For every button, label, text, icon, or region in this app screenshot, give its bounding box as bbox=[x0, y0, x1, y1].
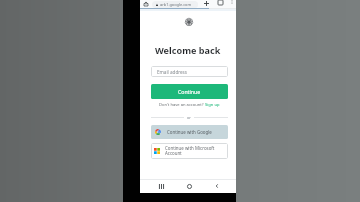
staticText: Continue with Google bbox=[167, 129, 212, 135]
button[interactable]: Back bbox=[212, 179, 222, 193]
button[interactable]: Home bbox=[184, 179, 194, 193]
button[interactable]: Continue with Microsoft Account bbox=[151, 143, 228, 159]
button[interactable]: New tab bbox=[202, 0, 210, 7]
staticText: Email address bbox=[157, 69, 188, 75]
staticText: Welcome back bbox=[155, 44, 221, 56]
button[interactable]: Email address bbox=[151, 66, 228, 77]
staticText: Continue with Microsoft Account bbox=[165, 145, 215, 157]
staticText: Don't have an account? bbox=[159, 102, 205, 108]
button[interactable]: Tabs bbox=[218, 0, 223, 6]
button[interactable]: Recents bbox=[156, 179, 166, 193]
button[interactable]: Share bbox=[142, 0, 149, 7]
button[interactable]: More options bbox=[230, 0, 234, 6]
staticText: Continue bbox=[178, 88, 201, 95]
button[interactable]: arb1.google.com bbox=[152, 1, 198, 8]
staticText: Sign up bbox=[205, 102, 220, 108]
button[interactable]: Continue with Google bbox=[151, 125, 228, 139]
staticText: arb1.google.com bbox=[160, 2, 192, 7]
button[interactable]: Continue bbox=[151, 84, 228, 99]
staticText: or bbox=[187, 115, 191, 120]
button[interactable]: Sign up bbox=[205, 102, 220, 108]
